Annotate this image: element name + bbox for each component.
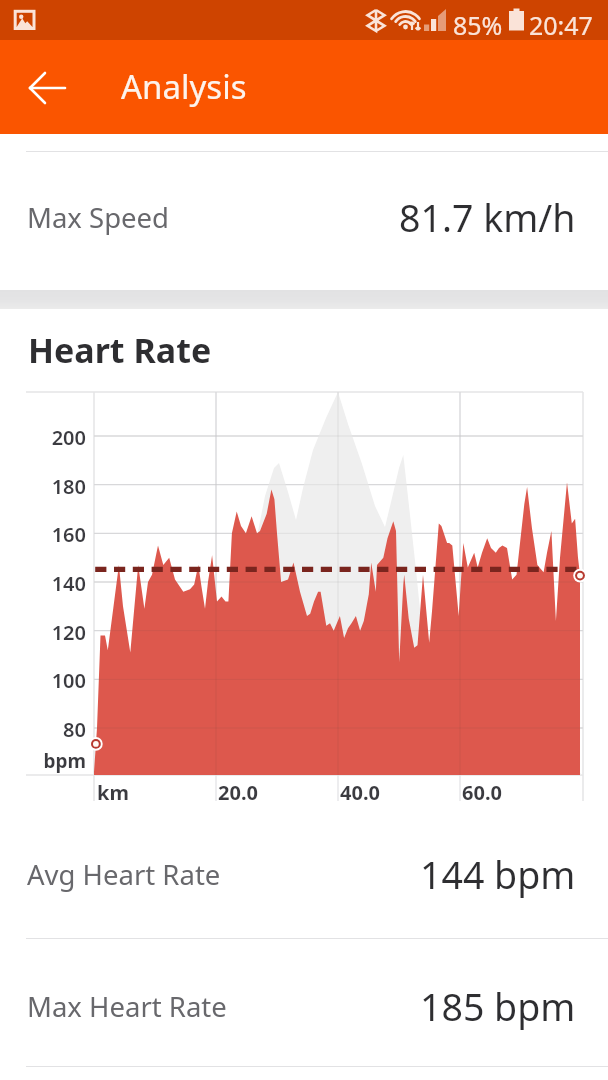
staticText: 100 xyxy=(0,667,86,694)
staticText: bpm xyxy=(0,748,86,774)
button[interactable]: Max Speed xyxy=(0,149,608,286)
staticText: 180 xyxy=(0,473,86,500)
staticText: 80 xyxy=(0,716,86,743)
staticText: km xyxy=(97,779,129,806)
staticText: 160 xyxy=(0,521,86,548)
staticText: 140 xyxy=(0,570,86,597)
staticText: 60.0 xyxy=(462,779,502,806)
staticText: 20.0 xyxy=(218,779,258,806)
staticText: 120 xyxy=(0,619,86,646)
button[interactable]: Avg Heart Rate xyxy=(0,810,608,938)
staticText: 81.7 km/h xyxy=(399,192,576,243)
button[interactable]: Back xyxy=(22,64,70,112)
button[interactable]: Max Heart Rate xyxy=(0,943,608,1070)
staticText: 200 xyxy=(0,424,86,451)
staticText: 40.0 xyxy=(340,779,380,806)
staticText: Max Speed xyxy=(27,199,170,236)
staticText: Avg Heart Rate xyxy=(27,856,221,893)
staticText: 85% xyxy=(453,8,503,42)
staticText: 185 bpm xyxy=(420,981,576,1032)
staticText: 20:47 xyxy=(529,8,593,42)
staticText: 144 bpm xyxy=(420,849,576,900)
staticText: Analysis xyxy=(121,64,247,109)
staticText: Max Heart Rate xyxy=(27,988,227,1025)
staticText: Heart Rate xyxy=(28,327,212,373)
